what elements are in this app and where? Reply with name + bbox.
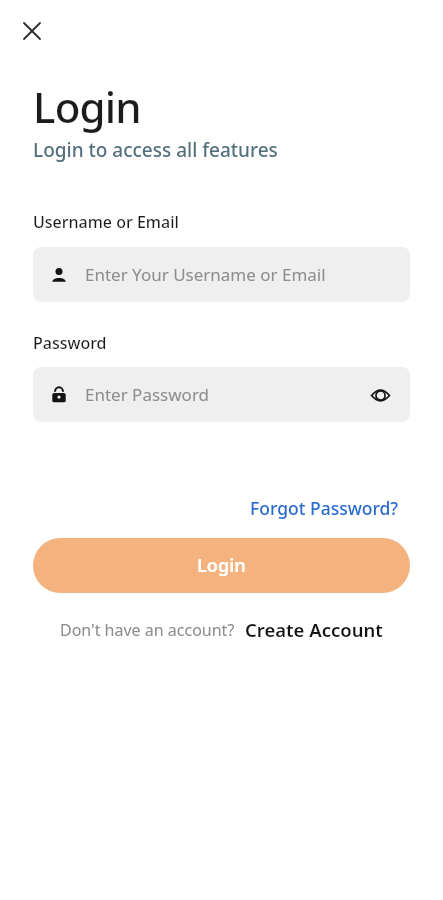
staticText: Login [33, 78, 141, 135]
staticText: Enter Your Username or Email [85, 263, 326, 286]
button[interactable]: Enter Password [33, 367, 410, 422]
staticText: Don't have an account? [60, 619, 235, 641]
button[interactable] [366, 381, 394, 409]
staticText: Username or Email [33, 211, 179, 233]
button[interactable]: Forgot Password? [250, 496, 399, 520]
button[interactable]: Create Account [245, 617, 383, 642]
staticText: Login to access all features [33, 137, 278, 163]
button[interactable]: Login [33, 538, 410, 593]
button[interactable] [12, 11, 52, 51]
staticText: Login [197, 553, 246, 578]
staticText: Enter Password [85, 383, 210, 406]
button[interactable]: Enter Your Username or Email [33, 247, 410, 302]
staticText: Password [33, 332, 107, 354]
